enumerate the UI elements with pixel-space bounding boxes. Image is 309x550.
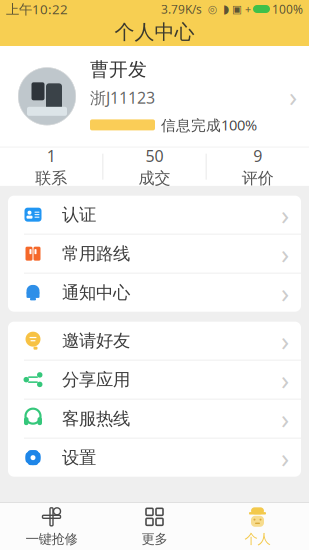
- button[interactable]: 通知中心: [8, 274, 301, 312]
- staticText: 9: [253, 145, 262, 166]
- staticText: 1: [47, 145, 56, 166]
- staticText: 更多: [141, 531, 167, 547]
- staticText: 个人中心: [114, 20, 194, 44]
- staticText: 成交: [138, 168, 170, 188]
- staticText: 3.79K/s: [161, 1, 202, 17]
- staticText: 个人: [244, 531, 270, 547]
- staticText: 通知中心: [62, 282, 130, 303]
- staticText: ›: [281, 197, 289, 232]
- staticText: ›: [281, 440, 289, 475]
- staticText: 设置: [62, 447, 96, 468]
- button[interactable]: 分享应用: [8, 361, 301, 400]
- button[interactable]: 个人: [206, 503, 309, 550]
- button[interactable]: 认证: [8, 196, 301, 235]
- staticText: 曹开发: [90, 58, 147, 81]
- staticText: 邀请好友: [62, 330, 130, 351]
- staticText: ◎: [202, 3, 223, 15]
- staticText: ›: [289, 79, 297, 114]
- button[interactable]: 曹开发: [0, 46, 309, 147]
- button[interactable]: 设置: [8, 439, 301, 477]
- staticText: 常用路线: [62, 243, 130, 264]
- button[interactable]: 1: [0, 148, 102, 186]
- staticText: 50: [145, 145, 163, 166]
- staticText: 认证: [62, 204, 96, 225]
- staticText: 浙J11123: [90, 87, 155, 108]
- staticText: 联系: [35, 168, 67, 188]
- staticText: 信息完成100%: [161, 115, 257, 135]
- staticText: ›: [281, 275, 289, 310]
- button[interactable]: 更多: [103, 503, 206, 550]
- staticText: 客服热线: [62, 408, 130, 429]
- button[interactable]: 常用路线: [8, 235, 301, 274]
- staticText: ›: [281, 236, 289, 271]
- button[interactable]: 50: [103, 148, 206, 186]
- staticText: ›: [281, 401, 289, 436]
- button[interactable]: 客服热线: [8, 400, 301, 439]
- staticText: 分享应用: [62, 369, 130, 390]
- staticText: ▣: [229, 3, 245, 15]
- button[interactable]: 9: [207, 148, 309, 186]
- staticText: 评价: [242, 168, 274, 188]
- staticText: +: [245, 2, 251, 16]
- staticText: 上午10:22: [6, 0, 68, 18]
- staticText: ◗: [223, 2, 229, 16]
- staticText: 一键抢修: [25, 531, 77, 547]
- button[interactable]: 邀请好友: [8, 322, 301, 361]
- staticText: 100%: [272, 1, 303, 17]
- button[interactable]: 一键抢修: [0, 503, 103, 550]
- staticText: ›: [281, 362, 289, 397]
- staticText: ›: [281, 323, 289, 358]
